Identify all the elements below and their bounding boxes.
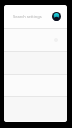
staticText: Search settings: [13, 14, 42, 19]
button[interactable]: Search settings: [13, 14, 49, 19]
button[interactable]: Account: [52, 12, 61, 21]
